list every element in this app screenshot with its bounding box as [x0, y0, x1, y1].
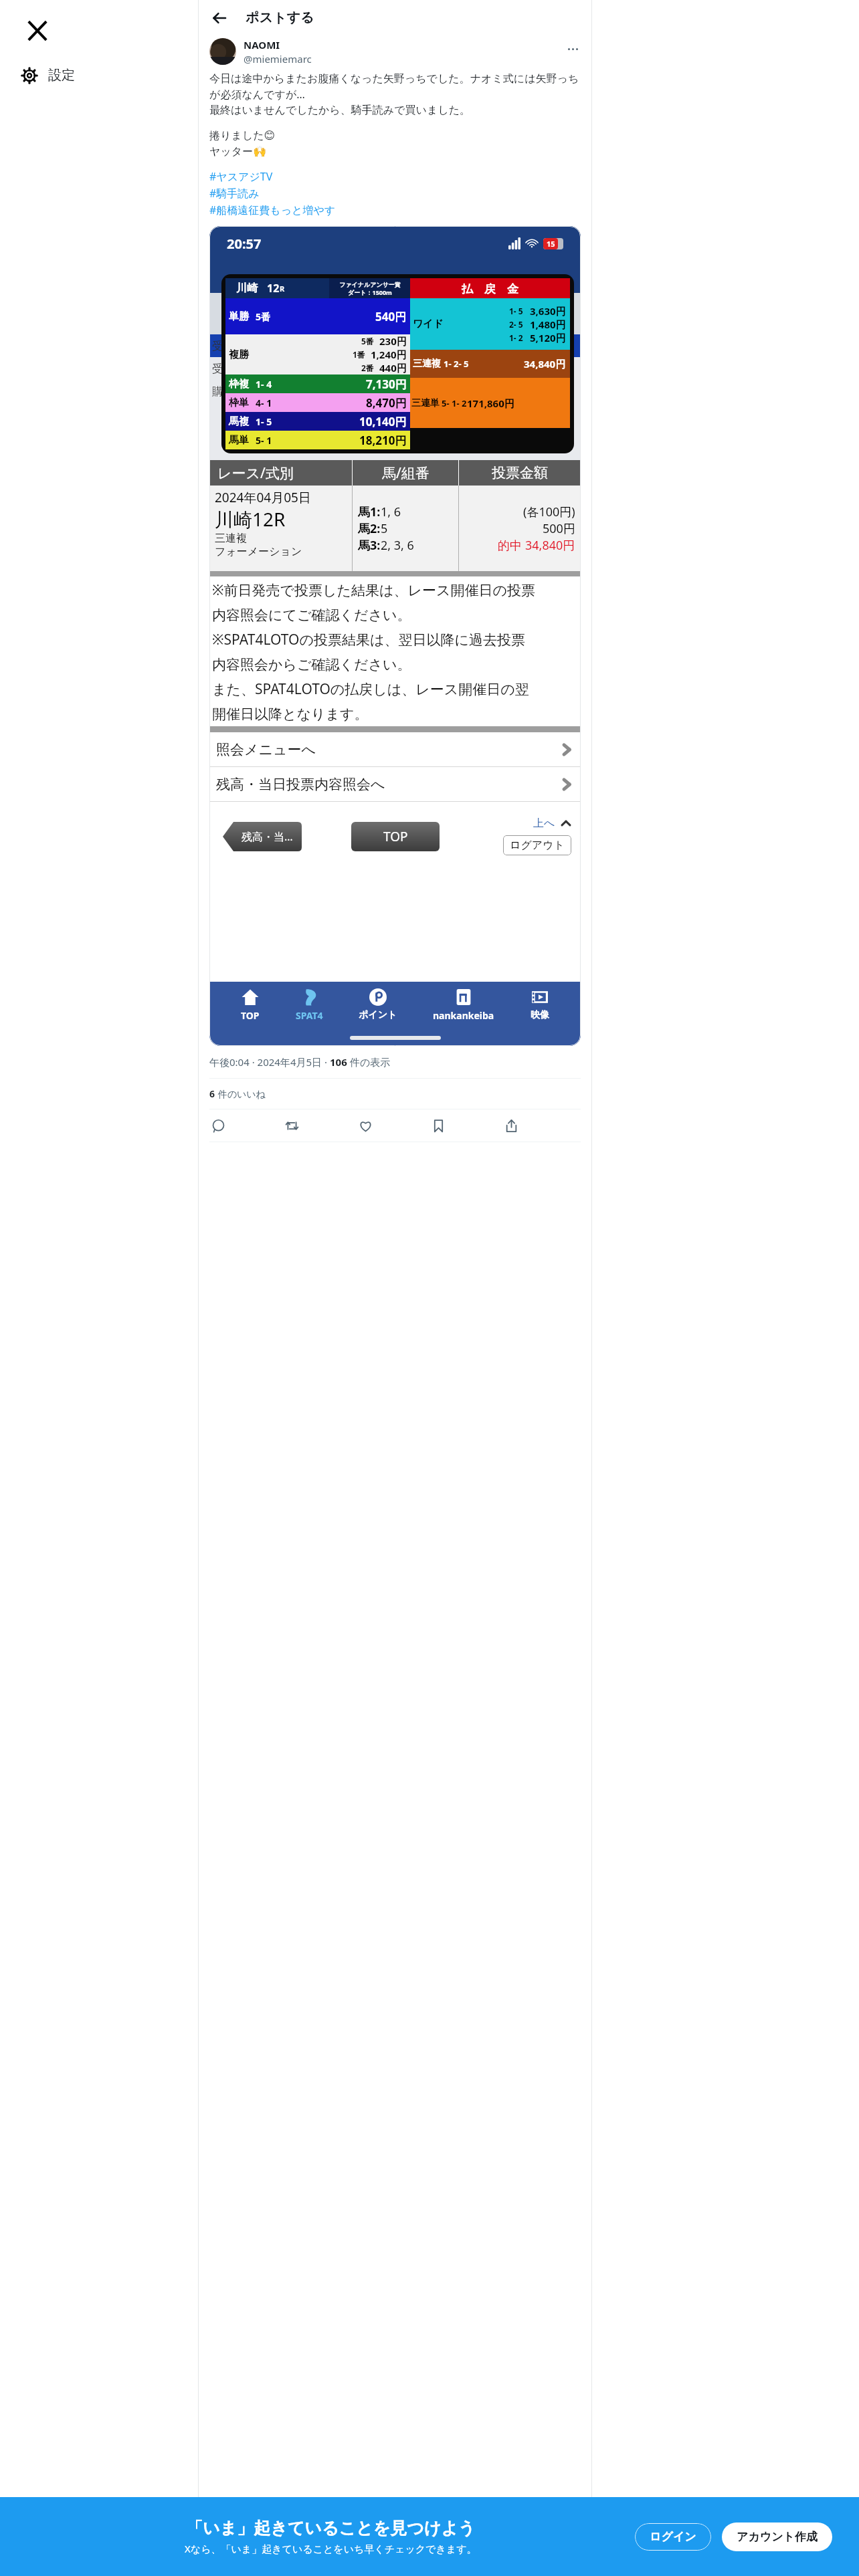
staticText: 5: [381, 520, 388, 537]
staticText: ダート：1500m: [348, 288, 392, 296]
staticText: 2番: [361, 362, 374, 373]
button[interactable]: 設定: [12, 60, 84, 90]
staticText: 件のいいね: [215, 1087, 266, 1100]
staticText: 的中: [498, 537, 525, 554]
button[interactable]: 戻る: [205, 4, 233, 32]
staticText: 12: [267, 281, 280, 296]
staticText: 単勝: [229, 310, 249, 323]
staticText: ポイント: [359, 1009, 397, 1021]
staticText: Xなら、「いま」起きていることをいち早くチェックできます。: [185, 2542, 477, 2555]
staticText: 内容照会からご確認ください。: [212, 656, 411, 673]
staticText: ※SPAT4LOTOの投票結果は、翌日以降に過去投票: [212, 630, 525, 649]
staticText: 枠単: [229, 397, 249, 409]
staticText: 設定: [48, 67, 75, 84]
staticText: 馬3:: [358, 537, 381, 554]
button[interactable]: いいね: [359, 1109, 432, 1142]
staticText: 34,840円: [524, 357, 566, 370]
staticText: 1,480円: [530, 318, 566, 331]
button[interactable]: 返信: [212, 1109, 286, 1142]
staticText: レース/式別: [217, 463, 294, 483]
button[interactable]: #騎手読み: [209, 186, 260, 201]
staticText: 1- 2- 5: [444, 358, 469, 370]
staticText: 15: [547, 239, 555, 249]
button[interactable]: リポスト: [286, 1109, 359, 1142]
staticText: 投票金額: [492, 464, 548, 481]
staticText: 440円: [379, 361, 407, 374]
staticText: 20:57: [227, 235, 262, 253]
staticText: 1- 4: [256, 378, 272, 391]
staticText: 3,630円: [530, 304, 566, 318]
button[interactable]: ブックマーク: [432, 1109, 505, 1142]
button[interactable]: nankankeiba: [429, 987, 498, 1023]
staticText: 払 戻 金: [462, 281, 518, 296]
staticText: ログアウト: [510, 839, 565, 852]
staticText: TOP: [383, 828, 408, 845]
staticText: ファイナルアンサー賞: [339, 281, 401, 288]
staticText: 1番: [353, 349, 365, 360]
button[interactable]: 映像: [527, 987, 553, 1023]
button[interactable]: TOP: [351, 822, 440, 851]
button[interactable]: #船橋遠征費もっと増やす: [209, 203, 336, 217]
staticText: 230円: [379, 334, 407, 348]
staticText: 2, 3, 6: [381, 537, 414, 554]
staticText: 枠複: [229, 378, 249, 391]
staticText: @miemiemarc: [244, 52, 312, 66]
staticText: 2- 5: [509, 319, 523, 330]
button[interactable]: 上へ: [533, 817, 571, 830]
staticText: 川崎: [236, 282, 258, 295]
staticText: 午後0:04 · 2024年4月5日 ·: [209, 1055, 330, 1069]
staticText: 捲りました😊 ヤッター🙌: [209, 129, 276, 158]
button[interactable]: 照会メニューへ: [209, 732, 581, 766]
staticText: R: [280, 284, 285, 294]
staticText: 6: [209, 1087, 215, 1100]
staticText: 件の表示: [347, 1055, 391, 1069]
staticText: 1- 5: [509, 306, 523, 316]
button[interactable]: プロフィール画像: [209, 38, 236, 65]
staticText: 5番: [361, 336, 374, 346]
staticText: 106: [330, 1055, 347, 1069]
staticText: nankankeiba: [433, 1009, 494, 1022]
staticText: 1- 5: [256, 415, 272, 428]
staticText: 「いま」起きていることを見つけよう: [186, 2518, 476, 2539]
staticText: 三連単: [411, 397, 440, 409]
staticText: 複勝: [229, 348, 249, 361]
staticText: 川崎12R: [215, 506, 286, 532]
button[interactable]: その他: [562, 38, 583, 60]
staticText: 購: [212, 385, 223, 399]
staticText: 171,860円: [467, 397, 514, 410]
button[interactable]: ログイン: [635, 2523, 711, 2551]
button[interactable]: 残高・当日投票内容照会へ: [209, 767, 581, 801]
staticText: 7,130円: [366, 377, 407, 392]
staticText: 540円: [375, 309, 407, 324]
staticText: 馬単: [229, 434, 249, 447]
staticText: (各100円): [523, 504, 575, 520]
staticText: 4- 1: [256, 397, 272, 409]
button[interactable]: ログアウト: [503, 835, 571, 855]
staticText: 8,470円: [366, 395, 407, 411]
button[interactable]: 投票結果のスクリーンショット: [209, 226, 581, 1046]
staticText: ポストする: [246, 9, 314, 26]
button[interactable]: 残高・当…: [223, 822, 302, 851]
button[interactable]: 共有: [505, 1109, 578, 1142]
staticText: 内容照会にてご確認ください。: [212, 607, 411, 624]
button[interactable]: X home: [16, 9, 59, 52]
button[interactable]: ポイント: [355, 987, 401, 1023]
button[interactable]: SPAT4: [292, 987, 327, 1023]
staticText: 受: [212, 340, 223, 353]
button[interactable]: TOP: [237, 987, 264, 1023]
staticText: 映像: [531, 1009, 549, 1021]
staticText: 1,240円: [371, 348, 407, 361]
button[interactable]: アカウント作成: [722, 2523, 832, 2551]
staticText: 18,210円: [359, 433, 407, 448]
staticText: 5,120円: [530, 331, 566, 344]
staticText: 残高・当日投票内容照会へ: [216, 776, 385, 793]
staticText: 5- 1: [256, 434, 272, 447]
staticText: 三連複: [215, 532, 247, 545]
staticText: 馬/組番: [382, 463, 429, 483]
staticText: 5番: [256, 310, 271, 323]
button[interactable]: 6: [209, 1087, 266, 1100]
button[interactable]: #ヤスアジTV: [209, 169, 273, 184]
staticText: また、SPAT4LOTOの払戻しは、レース開催日の翌: [212, 679, 529, 699]
staticText: 1- 2: [509, 332, 523, 343]
staticText: フォーメーション: [215, 545, 302, 558]
